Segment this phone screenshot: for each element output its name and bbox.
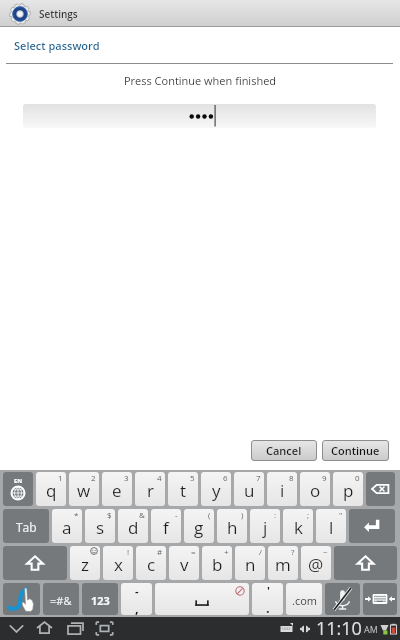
button[interactable]: y [201,472,231,506]
staticText: c [147,553,156,576]
button[interactable]: Password [23,104,376,128]
staticText: i [280,479,285,502]
button[interactable]: c [136,546,166,580]
staticText: 3 [124,472,129,483]
staticText: # [157,546,163,557]
button[interactable]: p [333,472,363,506]
button[interactable]: Numbers [82,583,118,615]
button[interactable]: Hide keyboard [363,583,397,615]
staticText: , [135,599,139,615]
button[interactable]: f [151,509,181,543]
button[interactable]: Screenshot [91,617,118,640]
button[interactable]: Swipe input [3,583,40,615]
button[interactable]: v [169,546,199,580]
staticText: g [194,516,204,539]
staticText: Select password [14,38,100,53]
button[interactable]: Cancel [251,440,317,461]
button[interactable]: , [121,583,152,615]
button[interactable]: s [85,509,115,543]
staticText: v [180,553,189,576]
button[interactable]: a [52,509,82,543]
button[interactable]: j [250,509,280,543]
button[interactable]: q [36,472,66,506]
button[interactable]: Shift [334,546,397,580]
staticText: @ [308,553,324,576]
staticText: 123 [91,593,110,608]
button[interactable]: Space [155,583,249,615]
staticText: 1 [58,472,63,483]
staticText: t [180,479,187,502]
button[interactable]: Back [3,617,30,640]
button[interactable]: i [267,472,297,506]
staticText: AM [364,623,378,635]
button[interactable]: . [252,583,283,615]
button[interactable]: g [184,509,214,543]
staticText: ' [267,583,270,598]
button[interactable]: l [316,509,346,543]
button[interactable]: Enter [349,509,395,543]
staticText: m [275,553,291,576]
staticText: - [135,583,139,598]
staticText: h [227,516,238,539]
button[interactable]: Voice input [325,583,360,615]
staticText: 2 [91,472,96,483]
staticText: & [139,509,145,520]
staticText: Tab [16,519,37,535]
button[interactable]: .com [286,583,322,615]
button[interactable]: t [168,472,198,506]
button[interactable]: Shift [3,546,67,580]
staticText: p [343,479,354,502]
staticText: 7 [256,472,261,483]
button[interactable]: x [103,546,133,580]
button[interactable]: b [202,546,232,580]
button[interactable]: Recents [62,617,89,640]
staticText: .com [292,593,317,608]
button[interactable]: Home [31,617,58,640]
button[interactable]: n [235,546,265,580]
button[interactable]: Continue [322,440,389,461]
staticText: 11:10 [316,616,362,639]
button[interactable]: m [268,546,298,580]
button[interactable]: w [69,472,99,506]
staticText: / [259,546,262,557]
button[interactable]: r [135,472,165,506]
staticText: j [263,516,268,539]
staticText: Cancel [266,443,302,458]
staticText: s [96,516,105,539]
staticText: l [329,516,334,539]
staticText: k [294,516,303,539]
button[interactable]: Language [3,472,33,506]
button[interactable]: Symbols [43,583,79,615]
button[interactable]: h [217,509,247,543]
staticText: 6 [223,472,228,483]
staticText: q [46,479,57,502]
staticText: 9 [322,472,327,483]
staticText: * [74,509,79,520]
button[interactable]: z [70,546,100,580]
staticText: x [114,553,123,576]
staticText: u [244,479,255,502]
staticText: w [77,479,91,502]
button[interactable]: d [118,509,148,543]
button[interactable]: Backspace [366,472,395,506]
staticText: ; [307,509,310,520]
button[interactable]: e [102,472,132,506]
button[interactable]: o [300,472,330,506]
staticText: ) [241,509,244,520]
button[interactable]: k [283,509,313,543]
staticText: 4 [157,472,162,483]
button[interactable]: u [234,472,264,506]
staticText: 8 [289,472,294,483]
staticText: = [191,546,196,557]
staticText: 5 [190,472,195,483]
staticText: Settings [39,7,78,21]
button[interactable]: Tab [3,509,49,543]
staticText: Continue [331,443,380,458]
staticText: : [274,509,277,520]
staticText: n [245,553,256,576]
staticText: EN [14,477,23,485]
staticText: y [212,479,221,502]
button[interactable]: @ [301,546,331,580]
staticText: 0 [355,472,360,483]
staticText: r [147,479,154,502]
